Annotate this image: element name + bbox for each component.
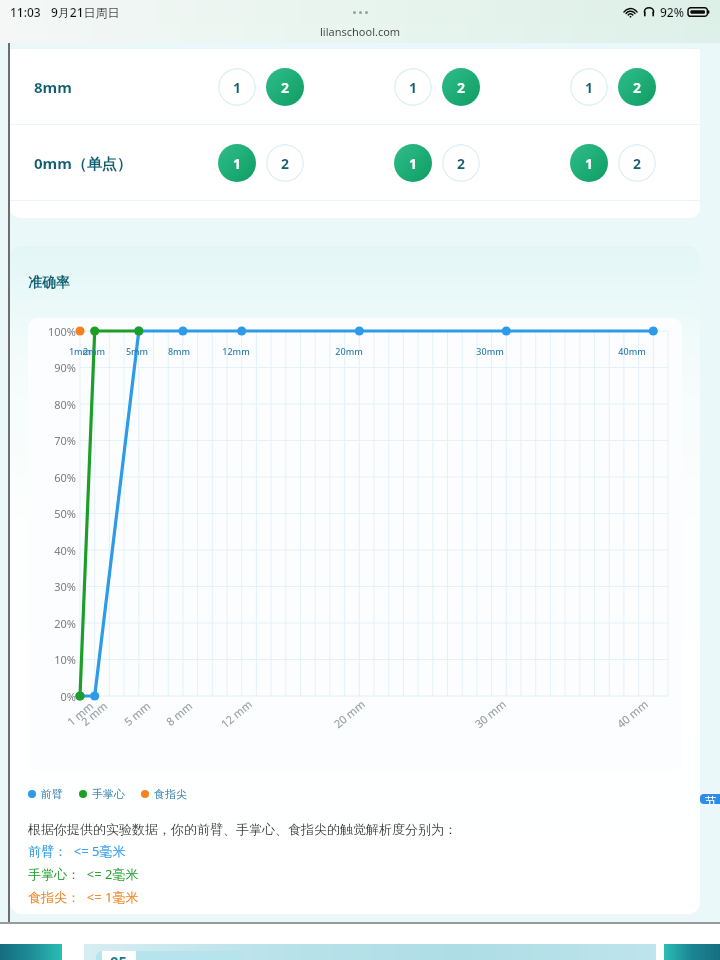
- staticText: 40%: [32, 543, 76, 558]
- button[interactable]: 05: [96, 951, 244, 960]
- staticText: 20%: [32, 616, 76, 631]
- button[interactable]: 1: [570, 68, 608, 106]
- staticText: 30mm: [470, 345, 510, 357]
- staticText: 手掌心： <= 2毫米: [28, 865, 139, 883]
- staticText: 8mm: [34, 77, 72, 97]
- staticText: 12mm: [216, 345, 256, 357]
- staticText: lilanschool.com: [320, 24, 401, 39]
- staticText: 90%: [32, 360, 76, 375]
- staticText: 05: [110, 951, 128, 960]
- button[interactable]: 侧边栏: [700, 794, 720, 804]
- staticText: 10%: [32, 652, 76, 667]
- staticText: 1: [409, 154, 418, 173]
- button[interactable]: 2: [442, 144, 480, 182]
- staticText: 2: [633, 78, 642, 97]
- button[interactable]: 1: [394, 144, 432, 182]
- staticText: 12 mm: [217, 696, 255, 731]
- staticText: 2 mm: [78, 698, 110, 729]
- button[interactable]: 2: [266, 144, 304, 182]
- staticText: 食指尖: [154, 787, 187, 801]
- button[interactable]: 2: [442, 68, 480, 106]
- staticText: 2mm: [74, 345, 114, 357]
- staticText: 0%: [32, 689, 76, 704]
- staticText: 手掌心: [92, 787, 125, 801]
- staticText: 60%: [32, 470, 76, 485]
- staticText: 1: [585, 154, 594, 173]
- staticText: 5mm: [117, 345, 157, 357]
- staticText: 40 mm: [613, 696, 651, 731]
- button[interactable]: 2: [618, 68, 656, 106]
- button[interactable]: 1: [218, 68, 256, 106]
- staticText: 80%: [32, 397, 76, 412]
- button[interactable]: 1: [570, 144, 608, 182]
- staticText: 100%: [32, 324, 76, 339]
- staticText: 8mm: [159, 345, 199, 357]
- staticText: 2: [633, 154, 642, 173]
- staticText: 2: [281, 154, 290, 173]
- staticText: 20mm: [329, 345, 369, 357]
- staticText: 11:03: [10, 4, 41, 20]
- button[interactable]: 1: [218, 144, 256, 182]
- staticText: 9月21日周日: [51, 4, 120, 20]
- staticText: 20 mm: [330, 696, 368, 731]
- staticText: 2: [457, 78, 466, 97]
- staticText: 70%: [32, 433, 76, 448]
- staticText: 根据你提供的实验数据，你的前臂、手掌心、食指尖的触觉解析度分别为：: [28, 821, 457, 837]
- staticText: 1 mm: [64, 698, 96, 729]
- staticText: 30%: [32, 579, 76, 594]
- staticText: 2: [457, 154, 466, 173]
- staticText: 50%: [32, 506, 76, 521]
- button[interactable]: 1: [394, 68, 432, 106]
- staticText: 92%: [660, 4, 684, 20]
- staticText: 30 mm: [471, 696, 509, 731]
- button[interactable]: 2: [266, 68, 304, 106]
- staticText: 1: [409, 78, 418, 97]
- staticText: 5 mm: [121, 698, 153, 729]
- staticText: 8 mm: [163, 698, 195, 729]
- button[interactable]: 2: [618, 144, 656, 182]
- staticText: 前臂: [41, 787, 63, 801]
- staticText: 前臂： <= 5毫米: [28, 842, 126, 860]
- staticText: 1: [233, 78, 242, 97]
- staticText: 准确率: [28, 274, 70, 292]
- staticText: 1: [585, 78, 594, 97]
- staticText: 2: [281, 78, 290, 97]
- staticText: 40mm: [612, 345, 652, 357]
- staticText: 1: [233, 154, 242, 173]
- staticText: 节: [705, 794, 716, 804]
- staticText: 0mm（单点）: [34, 153, 132, 173]
- staticText: 食指尖： <= 1毫米: [28, 888, 139, 906]
- staticText: 1mm: [60, 345, 100, 357]
